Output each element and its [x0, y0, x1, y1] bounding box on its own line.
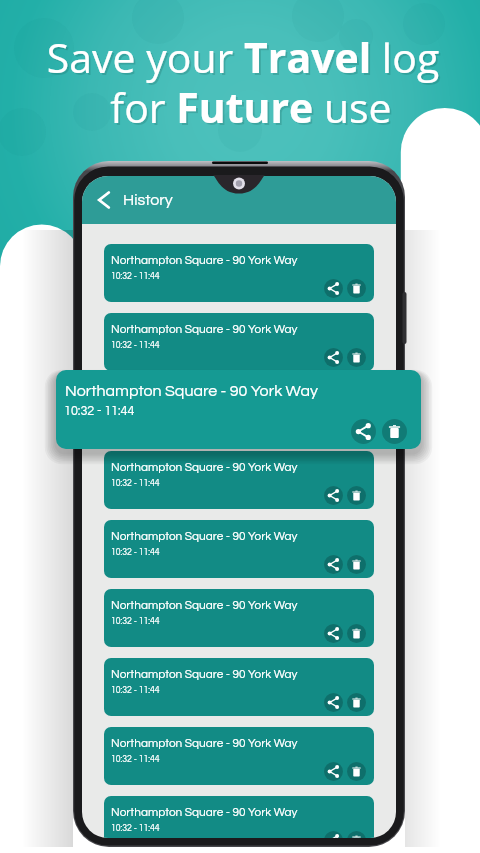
staticText: for Future use: [13, 81, 480, 137]
staticText: Northampton Square - 90 York Way: [111, 323, 298, 335]
button[interactable]: Share: [324, 624, 343, 643]
staticText: Save your Travel log: [3, 29, 480, 85]
button[interactable]: Share: [324, 555, 343, 574]
button[interactable]: Delete: [347, 279, 366, 298]
staticText: 10:32 - 11:44: [111, 755, 160, 764]
button[interactable]: Delete: [347, 348, 366, 367]
staticText: Northampton Square - 90 York Way: [111, 392, 298, 404]
button[interactable]: Delete: [347, 624, 366, 643]
button[interactable]: Delete: [347, 486, 366, 505]
staticText: 10:32 - 11:44: [111, 341, 160, 350]
staticText: 10:32 - 11:44: [111, 479, 160, 488]
button[interactable]: Delete: [347, 831, 366, 838]
staticText: 10:32 - 11:44: [111, 410, 160, 419]
staticText: Northampton Square - 90 York Way: [111, 254, 298, 266]
button[interactable]: Share: [324, 348, 343, 367]
staticText: Northampton Square - 90 York Way: [111, 737, 298, 749]
button[interactable]: Back: [96, 183, 173, 217]
staticText: for Future use: [11, 79, 480, 135]
button[interactable]: Northampton Square - 90 York Way: [56, 370, 421, 449]
button[interactable]: Northampton Square - 90 York Way: [104, 382, 374, 440]
button[interactable]: Share: [324, 831, 343, 838]
staticText: History: [123, 192, 173, 208]
button[interactable]: Share: [324, 693, 343, 712]
button[interactable]: Share: [351, 419, 376, 444]
button[interactable]: Northampton Square - 90 York Way: [104, 451, 374, 509]
staticText: Northampton Square - 90 York Way: [111, 530, 298, 542]
button[interactable]: Share: [324, 486, 343, 505]
button[interactable]: Share: [324, 762, 343, 781]
button[interactable]: Delete: [347, 762, 366, 781]
button[interactable]: Northampton Square - 90 York Way: [104, 796, 374, 838]
button[interactable]: Delete: [347, 417, 366, 436]
staticText: 10:32 - 11:44: [111, 686, 160, 695]
button[interactable]: Northampton Square - 90 York Way: [104, 658, 374, 716]
button[interactable]: Northampton Square - 90 York Way: [104, 520, 374, 578]
button[interactable]: Northampton Square - 90 York Way: [104, 727, 374, 785]
staticText: 10:32 - 11:44: [111, 272, 160, 281]
staticText: Northampton Square - 90 York Way: [111, 806, 298, 818]
button[interactable]: Share: [324, 279, 343, 298]
button[interactable]: Delete: [347, 693, 366, 712]
staticText: 10:32 - 11:44: [111, 548, 160, 557]
staticText: 10:32 - 11:44: [111, 617, 160, 626]
button[interactable]: Delete: [382, 419, 407, 444]
button[interactable]: Northampton Square - 90 York Way: [104, 313, 374, 371]
staticText: Northampton Square - 90 York Way: [65, 383, 318, 399]
staticText: 10:32 - 11:44: [111, 824, 160, 833]
button[interactable]: Northampton Square - 90 York Way: [104, 589, 374, 647]
staticText: Northampton Square - 90 York Way: [111, 599, 298, 611]
staticText: Northampton Square - 90 York Way: [111, 668, 298, 680]
staticText: Save your Travel log: [5, 31, 480, 87]
button[interactable]: Delete: [347, 555, 366, 574]
staticText: 10:32 - 11:44: [64, 405, 135, 418]
button[interactable]: Northampton Square - 90 York Way: [104, 244, 374, 302]
staticText: Northampton Square - 90 York Way: [111, 461, 298, 473]
